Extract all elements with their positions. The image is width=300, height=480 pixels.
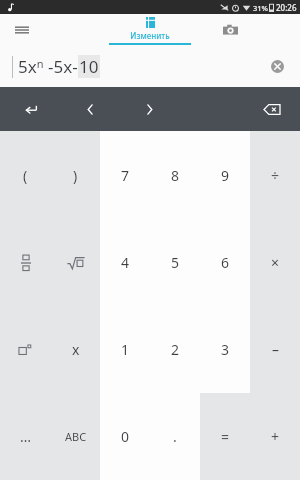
button[interactable]: ABC xyxy=(51,393,100,480)
button[interactable]: 5 xyxy=(150,219,200,306)
staticText: 0 xyxy=(121,427,130,446)
staticText: 4 xyxy=(121,253,130,272)
button[interactable]: Menu xyxy=(0,14,44,45)
button[interactable]: ( xyxy=(0,131,51,219)
staticText: ÷ xyxy=(271,166,280,185)
button[interactable]: 1 xyxy=(100,306,150,393)
button[interactable]: Square root xyxy=(51,219,100,306)
button[interactable]: x xyxy=(51,306,100,393)
staticText: 9 xyxy=(221,166,230,185)
button[interactable]: 8 xyxy=(150,131,200,219)
button[interactable]: Power xyxy=(0,306,51,393)
staticText: Изменить xyxy=(130,30,170,41)
button[interactable]: Clear xyxy=(266,55,288,77)
button[interactable]: Camera xyxy=(208,14,252,45)
staticText: x xyxy=(72,340,80,359)
button[interactable]: Enter xyxy=(12,91,48,127)
staticText: + xyxy=(271,427,280,446)
button[interactable]: × xyxy=(250,219,300,306)
staticText: 8 xyxy=(171,166,180,185)
staticText: ) xyxy=(73,166,78,185)
button[interactable]: + xyxy=(250,393,300,480)
button[interactable]: 6 xyxy=(200,219,250,306)
staticText: ABC xyxy=(65,429,87,444)
button[interactable]: = xyxy=(200,393,250,480)
staticText: 31% xyxy=(253,3,268,13)
staticText: 10 xyxy=(79,55,99,78)
button[interactable]: 9 xyxy=(200,131,250,219)
button[interactable]: 0 xyxy=(100,393,150,480)
staticText: 1 xyxy=(121,340,130,359)
staticText: 7 xyxy=(121,166,130,185)
staticText: … xyxy=(20,427,32,446)
staticText: 5xn -5x- xyxy=(18,55,78,78)
button[interactable]: Fraction xyxy=(0,219,51,306)
button[interactable]: – xyxy=(250,306,300,393)
button[interactable]: 3 xyxy=(200,306,250,393)
staticText: 3 xyxy=(221,340,230,359)
button[interactable]: 7 xyxy=(100,131,150,219)
staticText: . xyxy=(173,427,177,446)
staticText: 2 xyxy=(171,340,180,359)
staticText: 6 xyxy=(221,253,230,272)
button[interactable]: 2 xyxy=(150,306,200,393)
staticText: × xyxy=(271,253,280,272)
button[interactable]: Изменить xyxy=(105,14,195,45)
staticText: 20:26 xyxy=(276,2,297,13)
button[interactable]: Move right xyxy=(132,91,168,127)
staticText: = xyxy=(221,427,230,446)
button[interactable]: ÷ xyxy=(250,131,300,219)
button[interactable]: 4 xyxy=(100,219,150,306)
staticText: – xyxy=(272,340,279,359)
button[interactable]: … xyxy=(0,393,51,480)
button[interactable]: Move left xyxy=(72,91,108,127)
button[interactable]: Backspace xyxy=(254,91,290,127)
button[interactable]: . xyxy=(150,393,200,480)
staticText: ( xyxy=(23,166,28,185)
button[interactable]: ) xyxy=(51,131,100,219)
staticText: 5 xyxy=(171,253,180,272)
